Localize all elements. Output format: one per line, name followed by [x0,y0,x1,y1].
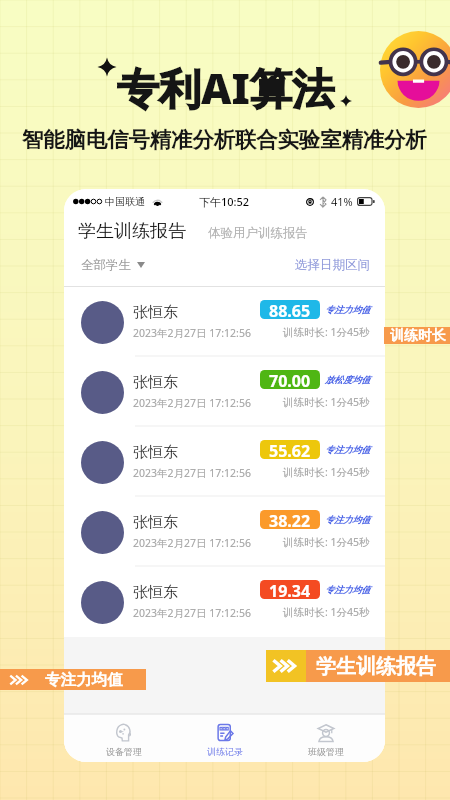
staticText: 专利AI算法 [117,59,334,116]
button[interactable]: 张恒东 [64,497,385,567]
staticText: 19.34 [269,580,311,599]
staticText: 张恒东 [133,443,178,462]
staticText: 张恒东 [133,303,178,322]
staticText: 专注力均值 [45,670,123,690]
staticText: 张恒东 [133,513,178,532]
staticText: 训练时长: 1分45秒 [283,535,370,549]
staticText: 专注力均值 [325,514,370,525]
staticText: 55.62 [269,440,311,459]
button[interactable]: 学生训练报告 [266,650,450,682]
staticText: 2023年2月27日 17:12:56 [133,466,251,480]
staticText: 2023年2月27日 17:12:56 [133,326,251,340]
staticText: 张恒东 [133,583,178,602]
button[interactable]: 班级管理 [275,714,376,762]
staticText: 专注力均值 [325,304,370,315]
staticText: 38.22 [269,510,311,529]
staticText: 下午10:52 [199,194,250,209]
other: 设备管理 [116,724,131,742]
staticText: 2023年2月27日 17:12:56 [133,606,251,620]
staticText: 张恒东 [133,373,178,392]
staticText: 专注力均值 [325,444,370,455]
staticText: 2023年2月27日 17:12:56 [133,536,251,550]
staticText: 全部学生 [81,257,131,273]
staticText: 70.00 [269,370,311,389]
staticText: 训练时长: 1分45秒 [283,465,370,479]
staticText: 选择日期区间 [295,257,370,273]
staticText: 班级管理 [308,746,344,757]
staticText: 训练时长: 1分45秒 [283,605,370,619]
button[interactable]: 专注力均值 [10,669,146,690]
staticText: 专注力均值 [325,584,370,595]
other: 训练记录 [217,724,233,741]
other: 班级管理 [318,724,334,742]
staticText: 中国联通 [105,195,145,208]
staticText: 学生训练报告 [316,654,436,679]
staticText: 放松度均值 [325,374,370,385]
button[interactable]: 选择日期区间 [295,257,370,273]
button[interactable]: 训练时长 [390,327,446,344]
staticText: 2023年2月27日 17:12:56 [133,396,251,410]
button[interactable]: 训练记录 [174,714,275,762]
button[interactable]: 设备管理 [73,714,174,762]
staticText: 训练时长: 1分45秒 [283,325,370,339]
staticText: 训练时长 [390,327,446,344]
button[interactable]: 张恒东 [64,287,385,357]
button[interactable]: 张恒东 [64,567,385,637]
button[interactable]: 张恒东 [64,427,385,497]
staticText: 智能脑电信号精准分析联合实验室精准分析 [22,126,427,153]
staticText: 设备管理 [106,746,142,757]
button[interactable]: 张恒东 [64,357,385,427]
staticText: 88.65 [269,300,311,319]
staticText: 训练记录 [207,746,243,757]
staticText: 体验用户训练报告 [208,225,308,241]
staticText: 41% [331,194,353,209]
staticText: 学生训练报告 [78,220,186,243]
staticText: 训练时长: 1分45秒 [283,395,370,409]
button[interactable]: 全部学生 [81,257,145,273]
